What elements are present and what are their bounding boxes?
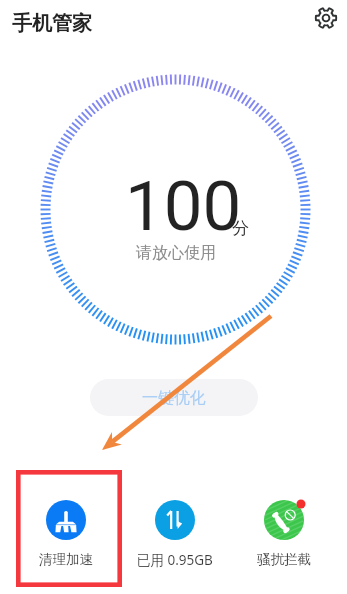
button[interactable]: 已用 0.95GB [129, 497, 221, 572]
staticText: 骚扰拦截 [257, 551, 311, 568]
button[interactable]: 一键优化 [90, 379, 258, 416]
button[interactable]: Settings [311, 3, 341, 33]
staticText: 分 [232, 218, 249, 239]
staticText: 手机管家 [12, 11, 92, 36]
button[interactable]: 骚扰拦截 [238, 497, 330, 572]
staticText: 清理加速 [39, 551, 93, 568]
button[interactable]: 清理加速 [20, 497, 112, 572]
staticText: 请放心使用 [136, 243, 216, 263]
staticText: 一键优化 [142, 388, 206, 408]
staticText: 已用 0.95GB [137, 551, 213, 569]
staticText: 100 [125, 166, 242, 247]
